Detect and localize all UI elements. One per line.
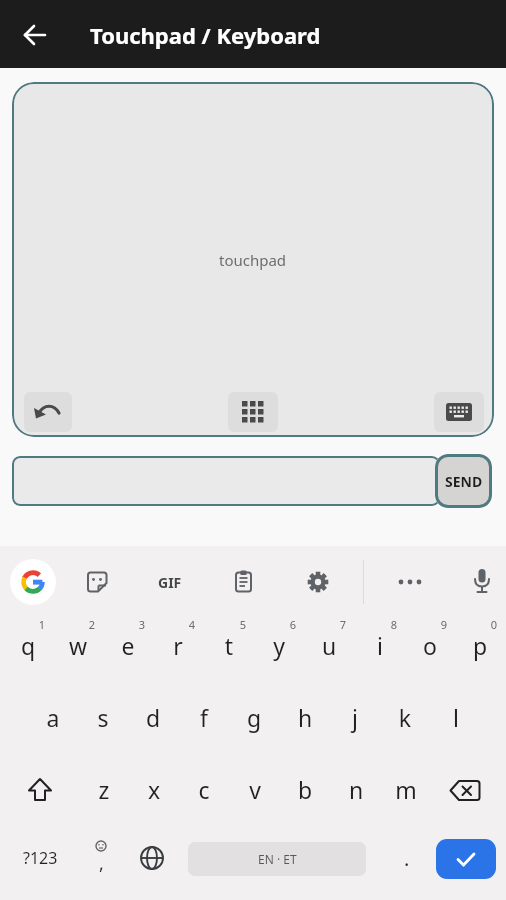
staticText: a: [33, 702, 73, 742]
staticText: 7: [328, 617, 358, 657]
button[interactable]: [22, 776, 58, 806]
button[interactable]: [228, 392, 278, 432]
staticText: p: [460, 630, 500, 670]
staticText: d: [133, 702, 173, 742]
staticText: SEND: [445, 472, 483, 491]
button[interactable]: Touchpad / Keyboard: [0, 0, 506, 68]
staticText: c: [184, 774, 224, 814]
staticText: ,: [99, 851, 104, 876]
button[interactable]: [24, 392, 72, 432]
staticText: 4: [177, 617, 207, 657]
staticText: g: [234, 702, 274, 742]
button[interactable]: [12, 456, 440, 506]
button[interactable]: touchpad: [12, 82, 494, 437]
staticText: 3: [127, 617, 157, 657]
staticText: o: [410, 630, 450, 670]
staticText: i: [360, 630, 400, 670]
button[interactable]: EN · ET: [188, 842, 366, 876]
staticText: h: [285, 702, 325, 742]
staticText: 0: [479, 617, 506, 657]
staticText: .: [404, 845, 410, 872]
staticText: l: [436, 702, 476, 742]
staticText: w: [58, 630, 98, 670]
staticText: k: [385, 702, 425, 742]
button[interactable]: [469, 567, 495, 597]
button[interactable]: [436, 839, 496, 879]
staticText: u: [309, 630, 349, 670]
button[interactable]: .: [394, 840, 420, 876]
staticText: 6: [278, 617, 308, 657]
staticText: x: [134, 774, 174, 814]
staticText: Touchpad / Keyboard: [90, 20, 321, 50]
button[interactable]: [230, 568, 257, 595]
staticText: touchpad: [219, 250, 287, 270]
staticText: n: [336, 774, 376, 814]
staticText: 9: [429, 617, 459, 657]
button[interactable]: [84, 569, 111, 596]
button[interactable]: [446, 777, 484, 805]
button[interactable]: [394, 570, 426, 594]
staticText: j: [335, 702, 375, 742]
staticText: 8: [379, 617, 409, 657]
staticText: b: [285, 774, 325, 814]
staticText: s: [83, 702, 123, 742]
staticText: EN · ET: [258, 851, 297, 867]
staticText: GIF: [158, 573, 182, 592]
button[interactable]: GIF: [146, 566, 194, 598]
button[interactable]: [138, 844, 166, 872]
staticText: f: [184, 702, 224, 742]
button[interactable]: [434, 392, 484, 432]
staticText: q: [8, 630, 48, 670]
staticText: z: [84, 774, 124, 814]
staticText: 1: [27, 617, 57, 657]
staticText: ?123: [23, 847, 58, 869]
staticText: m: [386, 774, 426, 814]
button[interactable]: SEND: [435, 454, 492, 508]
staticText: r: [158, 630, 198, 670]
button[interactable]: ,: [86, 838, 116, 880]
staticText: t: [209, 630, 249, 670]
button[interactable]: ?123: [12, 840, 68, 876]
staticText: 2: [77, 617, 107, 657]
button[interactable]: [305, 569, 331, 595]
button[interactable]: [10, 559, 56, 605]
staticText: e: [108, 630, 148, 670]
staticText: y: [259, 630, 299, 670]
staticText: 5: [228, 617, 258, 657]
staticText: v: [235, 774, 275, 814]
